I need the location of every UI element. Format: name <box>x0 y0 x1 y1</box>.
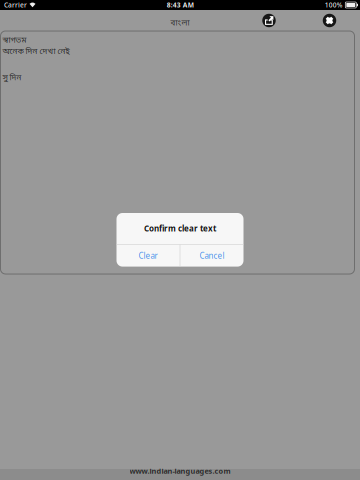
staticText: বাংলা <box>170 18 189 29</box>
staticText: 8:43 AM <box>167 1 194 9</box>
button[interactable]: Share <box>258 10 279 31</box>
staticText: Carrier <box>4 1 27 9</box>
staticText: অনেক দিন দেখা নেই <box>2 47 69 57</box>
button[interactable]: Clear <box>116 245 180 267</box>
button[interactable]: Clear text <box>319 10 340 31</box>
button[interactable]: Cancel <box>180 245 243 267</box>
staticText: স্বাগতম <box>2 35 26 46</box>
staticText: Confirm clear text <box>144 223 216 234</box>
staticText: সু দিন <box>2 73 21 83</box>
staticText: www.indian-languages.com <box>129 466 230 476</box>
staticText: 100% <box>325 1 343 9</box>
button[interactable]: www.indian-languages.com <box>0 469 360 480</box>
staticText: Cancel <box>199 250 224 261</box>
staticText: Clear <box>139 250 158 261</box>
